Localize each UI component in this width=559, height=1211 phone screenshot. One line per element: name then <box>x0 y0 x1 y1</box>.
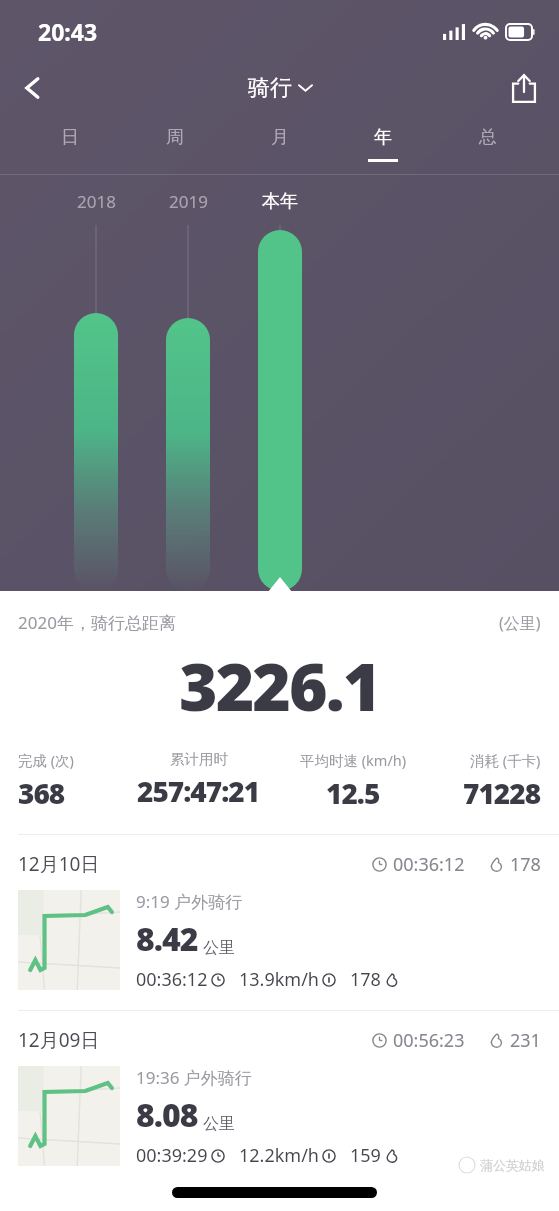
button[interactable]: 年 <box>331 126 435 174</box>
staticText: 13.9km/h <box>239 967 319 992</box>
staticText: 日 <box>61 126 79 149</box>
staticText: 178 <box>350 967 381 992</box>
staticText: 总 <box>479 126 497 149</box>
staticText: 本年 <box>262 190 298 213</box>
staticText: 8.08 <box>136 1093 198 1137</box>
staticText: 骑行 <box>248 74 292 102</box>
staticText: 12.5 <box>326 774 380 812</box>
button[interactable]: 总 <box>436 126 540 174</box>
staticText: 年 <box>374 126 392 149</box>
button[interactable]: Share <box>497 61 551 115</box>
staticText: 累计用时 <box>170 750 228 768</box>
staticText: 8.42 <box>136 917 198 961</box>
staticText: 00:36:12 <box>136 967 208 992</box>
staticText: 蒲公英姑娘 <box>480 1157 545 1173</box>
staticText: 公里 <box>203 938 235 958</box>
staticText: 3226.1 <box>179 640 380 730</box>
button[interactable]: 骑行 <box>238 68 322 108</box>
button[interactable]: 12月10日 <box>0 835 559 1010</box>
button[interactable]: 周 <box>123 126 227 174</box>
staticText: 178 <box>510 852 541 877</box>
staticText: (公里) <box>499 612 541 634</box>
staticText: 19:36 户外骑行 <box>136 1066 252 1089</box>
staticText: 00:36:12 <box>393 852 465 877</box>
staticText: 9:19 户外骑行 <box>136 890 243 913</box>
staticText: 12.2km/h <box>239 1143 319 1168</box>
button[interactable]: 月 <box>228 126 332 174</box>
button[interactable]: 12月09日 <box>0 1011 559 1186</box>
staticText: 消耗 (千卡) <box>470 750 541 770</box>
staticText: 月 <box>271 126 289 149</box>
staticText: 2018 <box>77 190 116 213</box>
staticText: 00:56:23 <box>393 1028 465 1053</box>
button[interactable]: 日 <box>18 126 122 174</box>
button[interactable]: Back <box>6 61 60 115</box>
staticText: 周 <box>166 126 184 149</box>
staticText: 257:47:21 <box>137 772 260 810</box>
staticText: 368 <box>18 774 65 812</box>
staticText: 20:43 <box>38 16 98 47</box>
staticText: 2019 <box>169 190 208 213</box>
staticText: 2020年，骑行总距离 <box>18 611 176 634</box>
staticText: 平均时速 (km/h) <box>300 750 407 770</box>
staticText: 完成 (次) <box>18 750 74 770</box>
staticText: 12月10日 <box>18 851 100 877</box>
staticText: 00:39:29 <box>136 1143 208 1168</box>
staticText: 公里 <box>203 1114 235 1134</box>
staticText: 12月09日 <box>18 1027 100 1053</box>
staticText: 159 <box>350 1143 381 1168</box>
staticText: 231 <box>510 1028 541 1053</box>
staticText: 71228 <box>463 774 541 812</box>
